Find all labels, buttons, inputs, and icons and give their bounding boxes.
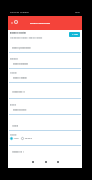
staticText: Male — [14, 137, 19, 140]
staticText: Mobile No 1 — [12, 151, 24, 154]
button[interactable] — [8, 102, 82, 115]
staticText: Gender — [10, 134, 17, 137]
button[interactable]: App logo — [14, 20, 18, 24]
staticText: Gender — [10, 133, 17, 136]
button[interactable]: Female — [21, 137, 32, 140]
staticText: Name — [12, 125, 18, 128]
staticText: Enquiry Master — [10, 32, 26, 35]
staticText: Eligibility — [10, 57, 18, 60]
staticText: College — [10, 71, 17, 74]
staticText: College — [10, 72, 17, 75]
button[interactable]: Home — [43, 159, 49, 165]
staticText: Eligibility — [10, 58, 18, 61]
staticText: Branch — [10, 103, 17, 106]
button[interactable] — [8, 91, 82, 99]
staticText: Select College — [13, 77, 27, 80]
staticText: Select Eligibility — [13, 62, 29, 65]
staticText: 4:07 PM 0.3KB/s — [10, 10, 29, 13]
staticText: Select Branch — [13, 108, 27, 111]
button[interactable] — [8, 44, 82, 55]
staticText: 76% — [75, 10, 80, 13]
staticText: Admission Yr — [12, 90, 25, 93]
staticText: Enquiry Master — [10, 31, 26, 34]
staticText: Select Qualification — [12, 46, 31, 49]
staticText: Select Branch — [13, 109, 27, 112]
staticText: Select Qualification — [12, 47, 31, 50]
button[interactable]: Back — [30, 159, 36, 165]
staticText: Name — [12, 124, 18, 127]
staticText: Branch — [10, 104, 17, 107]
staticText: Add Enquiry Details : Enquiry Master — [10, 37, 43, 40]
button[interactable]: Open navigation menu — [8, 16, 82, 30]
staticText: Select College — [13, 76, 27, 79]
button[interactable] — [8, 123, 82, 131]
button[interactable]: Open navigation menu — [9, 20, 14, 25]
staticText: Mobile No 1 — [12, 150, 24, 153]
staticText: SMART CAMPUS ERP — [30, 22, 50, 25]
button[interactable]: Male — [10, 137, 19, 140]
staticText: + ADD — [72, 33, 78, 36]
button[interactable] — [8, 70, 82, 83]
staticText: Select Eligibility — [13, 63, 29, 66]
staticText: Female — [25, 137, 32, 140]
button[interactable] — [8, 55, 82, 69]
button[interactable]: + ADD — [69, 32, 80, 37]
button[interactable]: Recents — [55, 159, 61, 165]
staticText: Admission Yr — [12, 91, 25, 94]
staticText: Add Enquiry Details : Enquiry Master — [10, 36, 43, 39]
